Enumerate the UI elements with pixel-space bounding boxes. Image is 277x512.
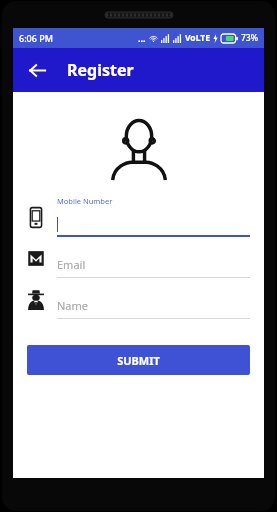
button[interactable]: SUBMIT [27,345,250,375]
staticText: SUBMIT [117,353,160,368]
other: Name [27,289,45,310]
staticText: 6:06 PM [19,32,53,44]
staticText: ... [138,32,146,44]
button[interactable]: Back [21,54,53,86]
staticText: Email [57,257,86,272]
staticText: Mobile Number [57,196,113,206]
staticText: 73% [241,32,258,44]
staticText: VoLTE [185,32,210,44]
button[interactable]: Email [27,237,250,278]
staticText: Name [57,298,89,313]
staticText: Register [67,59,134,81]
button[interactable]: Mobile [27,196,250,237]
other: Email [27,248,45,269]
other: Mobile [27,207,45,228]
button[interactable]: Name [27,278,250,319]
